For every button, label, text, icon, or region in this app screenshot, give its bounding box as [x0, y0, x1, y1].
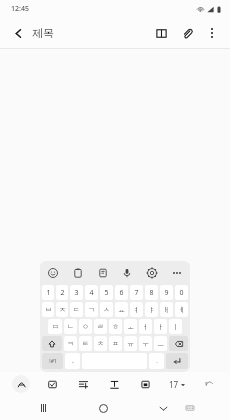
staticText: ㅎ: [112, 322, 119, 331]
staticText: ㅍ: [112, 339, 119, 348]
staticText: ㅁ: [52, 322, 59, 331]
button[interactable]: 6: [115, 285, 128, 300]
button[interactable]: ㅎ: [109, 319, 122, 334]
button[interactable]: Keyboard settings: [145, 266, 159, 280]
staticText: ㅕ: [133, 305, 140, 314]
button[interactable]: 7: [130, 285, 143, 300]
staticText: ㅐ: [163, 305, 170, 314]
button[interactable]: ㅍ: [109, 336, 122, 351]
button[interactable]: 4: [85, 285, 98, 300]
button[interactable]: Shift: [42, 336, 62, 351]
button[interactable]: ㅌ: [79, 336, 92, 351]
button[interactable]: 9: [160, 285, 173, 300]
staticText: 3: [74, 288, 79, 298]
staticText: ㅈ: [59, 305, 66, 314]
staticText: ㄷ: [73, 305, 80, 314]
staticText: 6: [119, 288, 124, 298]
button[interactable]: Home: [92, 397, 114, 419]
button[interactable]: Hide keyboard: [152, 397, 174, 419]
staticText: 0: [179, 288, 184, 298]
button[interactable]: 17: [167, 379, 187, 390]
staticText: !#1: [49, 358, 57, 365]
button[interactable]: !#1: [42, 353, 63, 369]
button[interactable]: Draw: [12, 375, 30, 393]
staticText: 12:45: [11, 4, 29, 14]
button[interactable]: Stickers: [96, 266, 110, 280]
staticText: ㅋ: [67, 339, 74, 348]
staticText: ,: [72, 357, 74, 365]
staticText: .: [156, 357, 158, 365]
button[interactable]: ㄷ: [70, 302, 83, 317]
button[interactable]: ㅡ: [154, 336, 167, 351]
staticText: 9: [164, 288, 169, 298]
staticText: ㄱ: [88, 305, 95, 314]
staticText: ㅜ: [142, 339, 149, 348]
button[interactable]: ㅏ: [154, 319, 167, 334]
button[interactable]: ㅇ: [79, 319, 92, 334]
button[interactable]: ㅐ: [160, 302, 173, 317]
button[interactable]: 3: [70, 285, 83, 300]
staticText: ㅡ: [157, 339, 164, 348]
button[interactable]: 1: [42, 285, 54, 300]
staticText: ㅌ: [82, 339, 89, 348]
staticText: ㅅ: [103, 305, 110, 314]
button[interactable]: More: [170, 266, 184, 280]
button[interactable]: .: [149, 353, 164, 369]
staticText: ㅛ: [118, 305, 125, 314]
button[interactable]: ㅗ: [124, 319, 137, 334]
button[interactable]: 5: [100, 285, 113, 300]
button[interactable]: ㅅ: [100, 302, 113, 317]
staticText: ㅂ: [45, 305, 52, 314]
staticText: 7: [134, 288, 139, 298]
button[interactable]: ㅑ: [145, 302, 158, 317]
staticText: ㅑ: [148, 305, 155, 314]
button[interactable]: ㄹ: [94, 319, 107, 334]
staticText: ㅠ: [127, 339, 134, 348]
button[interactable]: ㅛ: [115, 302, 128, 317]
button[interactable]: Voice input: [120, 266, 134, 280]
staticText: 17: [169, 379, 179, 390]
button[interactable]: ㄱ: [85, 302, 98, 317]
staticText: ㅇ: [82, 322, 89, 331]
button[interactable]: ㅊ: [94, 336, 107, 351]
button[interactable]: Insert image: [136, 375, 154, 393]
button[interactable]: ㅋ: [64, 336, 77, 351]
button[interactable]: ㅣ: [169, 319, 182, 334]
button[interactable]: ㅈ: [56, 302, 68, 317]
staticText: 2: [60, 288, 65, 298]
button[interactable]: Paragraph: [74, 375, 92, 393]
button[interactable]: 2: [56, 285, 68, 300]
button[interactable]: ㅓ: [139, 319, 152, 334]
button[interactable]: Text format: [105, 375, 123, 393]
button[interactable]: ,: [65, 353, 80, 369]
button[interactable]: Undo: [200, 375, 218, 393]
button[interactable]: Emoji: [46, 266, 60, 280]
staticText: ㅓ: [142, 322, 149, 331]
button[interactable]: ㅠ: [124, 336, 137, 351]
button[interactable]: Clipboard: [71, 266, 85, 280]
button[interactable]: ㅔ: [175, 302, 188, 317]
button[interactable]: 8: [145, 285, 158, 300]
staticText: ㄹ: [97, 322, 104, 331]
button[interactable]: Enter: [166, 353, 188, 369]
button[interactable]: Delete: [169, 336, 188, 351]
button[interactable]: ㅂ: [42, 302, 54, 317]
button[interactable]: Back: [8, 23, 28, 43]
button[interactable]: Attach: [177, 23, 197, 43]
button[interactable]: ㅁ: [48, 319, 62, 334]
button[interactable]: 0: [175, 285, 188, 300]
button[interactable]: ㅕ: [130, 302, 143, 317]
staticText: 5: [104, 288, 109, 298]
button[interactable]: ㄴ: [64, 319, 77, 334]
button[interactable]: Keyboard: [182, 400, 198, 416]
button[interactable]: Checklist: [43, 375, 61, 393]
staticText: ㅗ: [127, 322, 134, 331]
staticText: ㅔ: [178, 305, 185, 314]
button[interactable]: Recents: [32, 397, 54, 419]
staticText: 1: [46, 288, 51, 298]
staticText: 4: [89, 288, 94, 298]
button[interactable]: Reading view: [151, 23, 171, 43]
button[interactable]: ㅜ: [139, 336, 152, 351]
button[interactable]: More options: [202, 23, 222, 43]
